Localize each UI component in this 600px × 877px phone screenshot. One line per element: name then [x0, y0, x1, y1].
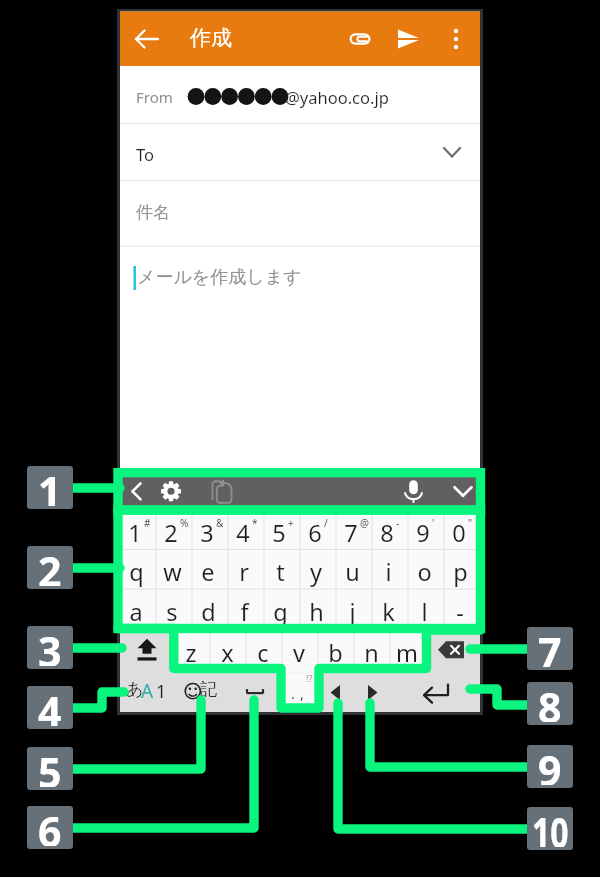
- staticText: e: [201, 556, 215, 588]
- staticText: 7: [344, 517, 358, 549]
- staticText: 3: [38, 626, 62, 666]
- staticText: 1: [156, 679, 167, 704]
- staticText: A: [141, 678, 154, 704]
- button[interactable]: h: [298, 592, 334, 632]
- staticText: w: [163, 556, 182, 588]
- button[interactable]: i: [370, 552, 406, 592]
- button[interactable]: w: [154, 552, 190, 592]
- button[interactable]: r: [226, 552, 262, 592]
- button[interactable]: Callout 10: [527, 807, 573, 850]
- staticText: 4: [236, 517, 250, 549]
- staticText: l: [421, 596, 428, 628]
- button[interactable]: 0: [441, 513, 477, 553]
- staticText: メールを作成します: [137, 266, 302, 289]
- staticText: z: [185, 637, 197, 669]
- button[interactable]: p: [442, 552, 478, 592]
- staticText: f: [240, 596, 249, 628]
- staticText: ,: [300, 684, 304, 703]
- button[interactable]: Callout 4: [27, 686, 73, 729]
- staticText: q: [129, 556, 144, 588]
- staticText: o: [417, 556, 432, 588]
- staticText: +: [288, 516, 294, 530]
- staticText: 5: [272, 517, 286, 549]
- staticText: 件名: [136, 202, 170, 223]
- button[interactable]: u: [334, 552, 370, 592]
- button[interactable]: 2: [153, 513, 189, 553]
- staticText: 7: [538, 627, 562, 667]
- button[interactable]: z: [173, 630, 209, 675]
- button[interactable]: b: [317, 630, 353, 675]
- staticText: 6: [38, 806, 62, 846]
- staticText: /: [324, 516, 328, 530]
- button[interactable]: Callout 1: [27, 466, 73, 509]
- button[interactable]: 8: [369, 513, 405, 553]
- button[interactable]: a: [118, 592, 154, 632]
- button[interactable]: 3: [189, 513, 225, 553]
- button[interactable]: Callout 5: [27, 747, 73, 790]
- button[interactable]: q: [118, 552, 154, 592]
- staticText: !?: [306, 672, 313, 684]
- button[interactable]: 9: [405, 513, 441, 553]
- button[interactable]: t: [262, 552, 298, 592]
- button[interactable]: e: [190, 552, 226, 592]
- staticText: k: [382, 596, 395, 628]
- staticText: #: [144, 516, 151, 530]
- button[interactable]: 6: [297, 513, 333, 553]
- staticText: n: [364, 637, 379, 669]
- staticText: v: [293, 637, 305, 669]
- button[interactable]: Callout 9: [527, 745, 573, 788]
- staticText: h: [309, 596, 324, 628]
- staticText: From: [136, 87, 173, 107]
- staticText: 9: [538, 745, 562, 785]
- button[interactable]: Callout 8: [527, 682, 573, 725]
- staticText: g: [273, 596, 288, 628]
- staticText: ': [432, 516, 435, 530]
- button[interactable]: v: [281, 630, 317, 675]
- staticText: d: [201, 596, 216, 628]
- button[interactable]: 4: [225, 513, 261, 553]
- staticText: 8: [538, 682, 562, 722]
- button[interactable]: -: [442, 592, 478, 632]
- staticText: &: [216, 516, 224, 530]
- staticText: u: [345, 556, 360, 588]
- button[interactable]: y: [298, 552, 334, 592]
- staticText: s: [166, 596, 178, 628]
- button[interactable]: Callout 3: [27, 626, 73, 669]
- button[interactable]: j: [334, 592, 370, 632]
- staticText: 1: [38, 466, 62, 506]
- staticText: x: [221, 637, 234, 669]
- staticText: 4: [38, 686, 62, 726]
- button[interactable]: 5: [261, 513, 297, 553]
- staticText: p: [453, 556, 468, 588]
- staticText: j: [349, 596, 356, 628]
- staticText: t: [276, 556, 285, 588]
- button[interactable]: k: [370, 592, 406, 632]
- staticText: 3: [200, 517, 214, 549]
- button[interactable]: l: [406, 592, 442, 632]
- button[interactable]: 1: [117, 513, 153, 553]
- staticText: 作成: [190, 25, 232, 51]
- button[interactable]: f: [226, 592, 262, 632]
- staticText: c: [257, 637, 269, 669]
- button[interactable]: Callout 2: [27, 546, 73, 589]
- staticText: 5: [38, 747, 62, 787]
- button[interactable]: n: [353, 630, 389, 675]
- button[interactable]: s: [154, 592, 190, 632]
- button[interactable]: c: [245, 630, 281, 675]
- button[interactable]: Callout 7: [527, 627, 573, 670]
- button[interactable]: x: [209, 630, 245, 675]
- button[interactable]: g: [262, 592, 298, 632]
- button[interactable]: 7: [333, 513, 369, 553]
- button[interactable]: m: [389, 630, 425, 675]
- staticText: y: [310, 556, 322, 588]
- staticText: 1: [128, 517, 142, 549]
- button[interactable]: o: [406, 552, 442, 592]
- staticText: r: [239, 556, 249, 588]
- staticText: 記: [200, 679, 217, 700]
- button[interactable]: Callout 6: [27, 806, 73, 849]
- staticText: *: [252, 516, 258, 530]
- button[interactable]: d: [190, 592, 226, 632]
- staticText: 10: [532, 807, 568, 847]
- staticText: a: [129, 596, 143, 628]
- staticText: m: [396, 637, 418, 669]
